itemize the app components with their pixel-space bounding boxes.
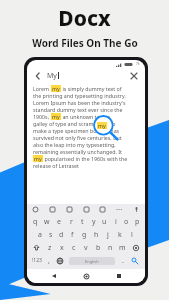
staticText: Docx (58, 4, 111, 33)
staticText: release of Letraset (33, 162, 79, 169)
button[interactable]: g (78, 228, 90, 241)
staticText: my (52, 85, 60, 92)
button[interactable]: Keyboard tool 2 (48, 205, 57, 214)
staticText: galley of type and scrambled it to (33, 120, 116, 127)
staticText: My (47, 71, 57, 81)
button[interactable]: p (132, 215, 143, 228)
staticText: k (118, 230, 122, 240)
button[interactable]: s (45, 228, 56, 241)
staticText: l (131, 230, 133, 240)
button[interactable]: Keyboard tool 3 (65, 205, 74, 214)
staticText: z (48, 243, 52, 253)
button[interactable]: k (114, 228, 126, 241)
staticText: c (72, 243, 76, 253)
button[interactable]: z (44, 241, 56, 254)
staticText: my (98, 122, 106, 129)
button[interactable]: f (67, 228, 78, 241)
staticText: remaining essentially unchanged. It (33, 148, 122, 155)
button[interactable]: y (88, 215, 99, 228)
button[interactable]: a (34, 228, 45, 241)
button[interactable]: Close (129, 71, 139, 81)
staticText: !123 (32, 257, 42, 264)
staticText: make a type specimen book. It has (33, 127, 120, 134)
button[interactable]: Keyboard tool 7 (132, 205, 141, 214)
staticText: h (94, 230, 99, 240)
button[interactable]: t (77, 215, 88, 228)
staticText: standard dummy text ever since the (33, 106, 123, 113)
button[interactable]: m (116, 241, 128, 254)
staticText: j (107, 230, 109, 240)
staticText: t (81, 217, 84, 227)
staticText: 76 (136, 62, 140, 66)
staticText: survived not only five centuries, but (33, 134, 122, 141)
button[interactable]: c (68, 241, 80, 254)
button[interactable]: i (110, 215, 121, 228)
staticText: my (52, 113, 60, 120)
button[interactable]: r (65, 215, 77, 228)
button[interactable]: Backspace (128, 241, 143, 254)
staticText: an unknown took a (61, 113, 111, 120)
button[interactable]: v (80, 241, 92, 254)
staticText: v (84, 243, 88, 253)
button[interactable]: Keyboard tool 5 (98, 205, 107, 214)
button[interactable]: . (118, 254, 128, 267)
button[interactable]: h (90, 228, 102, 241)
staticText: r (70, 217, 73, 227)
staticText: m (119, 243, 126, 253)
staticText: also the leap into my typesetting, (33, 141, 116, 148)
button[interactable]: b (92, 241, 104, 254)
staticText: the printing and typesetting industry. (33, 92, 126, 99)
staticText: 1900s, (33, 113, 51, 120)
staticText: d (59, 230, 64, 240)
staticText: , (48, 256, 50, 266)
staticText: Word Files On The Go (32, 36, 138, 50)
staticText: English (85, 259, 99, 264)
button[interactable]: q (29, 215, 41, 228)
button[interactable]: n (104, 241, 116, 254)
button[interactable]: Language (54, 254, 66, 267)
staticText: is simply dummy text of (61, 85, 122, 92)
staticText: q (33, 217, 38, 227)
staticText: popularised in the 1960s with the (43, 155, 128, 162)
button[interactable]: Emoji (44, 254, 54, 267)
button[interactable]: o (121, 215, 132, 228)
button[interactable]: j (102, 228, 114, 241)
staticText: x (60, 243, 64, 253)
staticText: u (102, 217, 107, 227)
staticText: my (34, 155, 42, 162)
staticText: f (71, 230, 74, 240)
staticText: g (82, 230, 87, 240)
button[interactable]: w (41, 215, 53, 228)
staticText: o (124, 217, 129, 227)
staticText: s (49, 230, 53, 240)
staticText: y (92, 217, 96, 227)
button[interactable]: l (126, 228, 138, 241)
button[interactable]: Keyboard tool 6 (115, 205, 124, 214)
button[interactable]: Recents (113, 270, 125, 282)
button[interactable]: u (99, 215, 110, 228)
staticText: w (44, 217, 50, 227)
button[interactable]: Home (80, 270, 92, 282)
staticText: Lorem (33, 85, 51, 92)
staticText: b (96, 243, 101, 253)
staticText: a (38, 230, 42, 240)
button[interactable]: Back (33, 71, 43, 81)
button[interactable]: x (56, 241, 68, 254)
staticText: Lorem Ipsum has been the industry's (33, 99, 126, 106)
staticText: e (57, 217, 61, 227)
button[interactable]: !123 (30, 254, 44, 267)
staticText: n (108, 243, 113, 253)
staticText: i (115, 217, 117, 227)
button[interactable]: e (53, 215, 65, 228)
button[interactable]: Shift (29, 241, 44, 254)
staticText: . (122, 256, 124, 266)
button[interactable]: Search (128, 254, 142, 267)
button[interactable]: d (56, 228, 67, 241)
button[interactable]: Keyboard tool 4 (82, 205, 91, 214)
staticText: p (135, 217, 140, 227)
button[interactable]: Keyboard tool 1 (31, 205, 40, 214)
button[interactable]: Back (48, 270, 60, 282)
button[interactable]: English (69, 257, 115, 265)
